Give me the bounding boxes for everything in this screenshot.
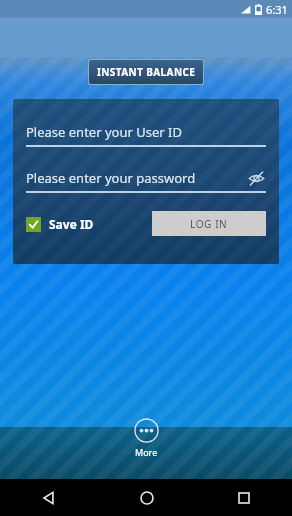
button[interactable]: Home bbox=[98, 479, 195, 516]
staticText: More bbox=[135, 446, 158, 458]
button[interactable]: INSTANT BALANCE bbox=[89, 60, 203, 84]
staticText: INSTANT BALANCE bbox=[97, 65, 196, 79]
staticText: LOG IN bbox=[190, 217, 228, 231]
button[interactable]: LOG IN bbox=[152, 211, 266, 236]
staticText: Please enter your User ID bbox=[26, 123, 182, 141]
staticText: Save ID bbox=[49, 216, 94, 232]
button[interactable]: Please enter your password bbox=[26, 168, 266, 193]
staticText: 6:31 bbox=[266, 2, 288, 17]
button[interactable]: Back bbox=[0, 479, 98, 516]
staticText: Please enter your password bbox=[26, 169, 196, 187]
button[interactable]: Save ID bbox=[26, 216, 94, 232]
button[interactable]: More bbox=[120, 415, 173, 461]
button[interactable]: Show password bbox=[246, 168, 266, 188]
button[interactable]: Recent apps bbox=[195, 479, 292, 516]
button[interactable]: Please enter your User ID bbox=[26, 122, 266, 147]
